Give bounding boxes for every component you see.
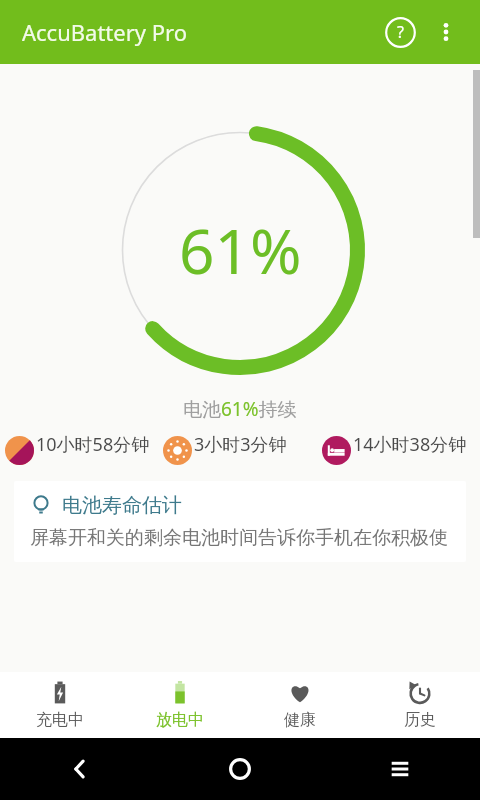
button[interactable]: 充电中 — [0, 672, 120, 738]
staticText: 历史 — [404, 710, 436, 730]
staticText: 电池寿命估计 — [62, 493, 182, 518]
button[interactable]: 电池寿命估计 — [14, 481, 466, 562]
staticText: 电池61%持续 — [183, 396, 297, 422]
button[interactable]: 14小时38分钟 — [319, 432, 478, 465]
button[interactable]: 历史 — [360, 672, 480, 738]
button[interactable]: Recent apps — [320, 738, 480, 800]
button[interactable]: Back — [0, 738, 160, 800]
button[interactable]: 健康 — [240, 672, 360, 738]
button[interactable]: More options — [424, 10, 468, 54]
button[interactable]: 3小时3分钟 — [160, 432, 319, 465]
button[interactable]: 放电中 — [120, 672, 240, 738]
button[interactable]: Home — [160, 738, 320, 800]
staticText: AccuBattery Pro — [22, 17, 188, 47]
button[interactable]: 10小时58分钟 — [2, 432, 160, 465]
staticText: 14小时38分钟 — [353, 432, 467, 457]
staticText: 10小时58分钟 — [36, 432, 150, 457]
button[interactable]: Help — [378, 10, 422, 54]
staticText: 充电中 — [36, 710, 84, 730]
staticText: 3小时3分钟 — [194, 432, 287, 457]
staticText: ? — [397, 21, 404, 43]
staticText: 61% — [179, 208, 302, 292]
staticText: 放电中 — [156, 710, 204, 730]
staticText: 健康 — [284, 710, 316, 730]
staticText: 屏幕开和关的剩余电池时间告诉你手机在你积极使 — [30, 526, 448, 550]
